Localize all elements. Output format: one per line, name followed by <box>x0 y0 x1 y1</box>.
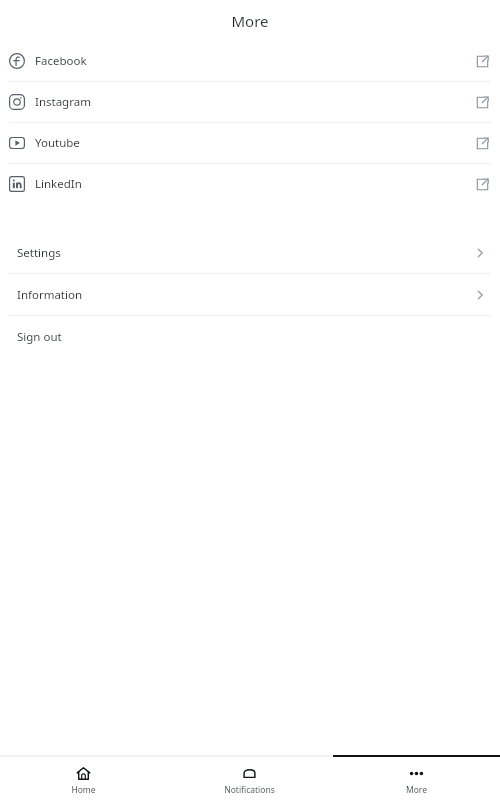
button[interactable]: LinkedIn <box>0 164 500 204</box>
staticText: Sign out <box>17 329 62 345</box>
button[interactable]: Settings <box>0 232 500 273</box>
button[interactable]: Information <box>0 274 500 315</box>
staticText: More <box>406 784 427 796</box>
other: Open Youtube <box>476 137 489 150</box>
staticText: More <box>231 11 269 31</box>
button[interactable]: Facebook <box>0 41 500 81</box>
button[interactable]: Notifications <box>166 757 333 796</box>
staticText: Facebook <box>35 53 87 69</box>
other: Open LinkedIn <box>476 178 489 191</box>
staticText: Notifications <box>224 784 275 796</box>
staticText: Settings <box>17 245 61 261</box>
staticText: Instagram <box>35 94 91 110</box>
button[interactable]: Home <box>0 757 166 796</box>
button[interactable]: Youtube <box>0 123 500 163</box>
staticText: Information <box>17 287 83 303</box>
staticText: LinkedIn <box>35 176 82 192</box>
staticText: Youtube <box>35 135 80 151</box>
button[interactable]: Instagram <box>0 82 500 122</box>
other: Open Instagram <box>476 96 489 109</box>
staticText: Home <box>71 784 96 796</box>
button[interactable]: More <box>333 757 500 796</box>
button[interactable]: Sign out <box>0 316 500 357</box>
other: Open Facebook <box>476 55 489 68</box>
